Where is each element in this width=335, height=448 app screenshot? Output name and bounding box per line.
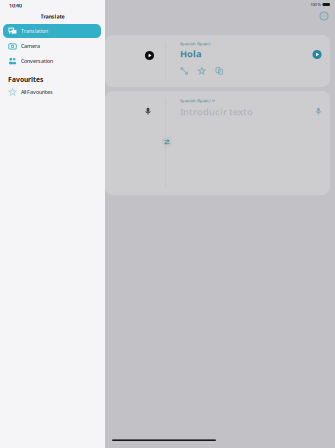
staticText: Spanish (Spain): [180, 41, 210, 46]
button[interactable]: Add to favourites: [197, 67, 206, 75]
button[interactable]: All Favourites: [3, 85, 101, 99]
button[interactable]: Camera: [3, 39, 101, 53]
button[interactable]: Expand: [180, 67, 188, 75]
button[interactable]: Microphone: [307, 91, 330, 195]
button[interactable]: Translation: [3, 24, 101, 38]
staticText: Hola: [180, 47, 202, 60]
staticText: Spanish (Spain): [180, 98, 210, 103]
staticText: Introducir texto: [180, 105, 253, 118]
button[interactable]: Copy: [215, 67, 223, 75]
staticText: Favourites: [8, 75, 43, 84]
staticText: Conversation: [21, 57, 53, 65]
staticText: Camera: [21, 42, 40, 50]
staticText: Translation: [21, 27, 48, 35]
button[interactable]: Play translation: [105, 35, 165, 87]
button[interactable]: Swap languages: [161, 136, 173, 148]
staticText: All Favourites: [21, 88, 53, 96]
button[interactable]: Conversation: [3, 54, 101, 68]
button[interactable]: Start recording: [105, 91, 165, 195]
staticText: Translate: [40, 13, 64, 20]
button[interactable]: Play: [304, 35, 330, 87]
staticText: 100 %: [310, 2, 320, 7]
button[interactable]: More options: [317, 9, 331, 23]
staticText: 10:40: [9, 2, 22, 9]
